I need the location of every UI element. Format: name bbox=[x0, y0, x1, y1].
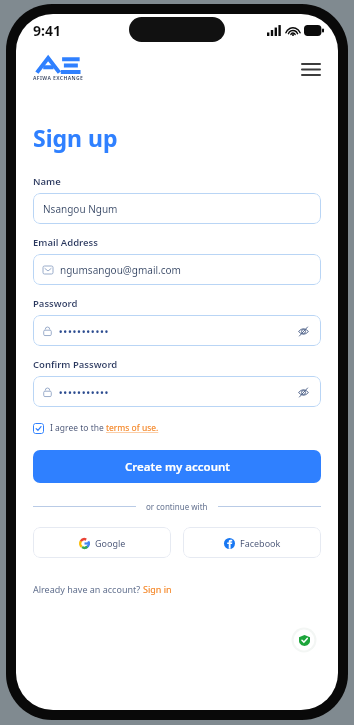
button[interactable]: ••••••••••• bbox=[33, 376, 321, 407]
button[interactable]: Facebook bbox=[183, 527, 321, 558]
staticText: Password bbox=[33, 297, 78, 310]
staticText: Email Address bbox=[33, 236, 98, 249]
button[interactable]: Show password bbox=[295, 384, 311, 400]
staticText: ••••••••••• bbox=[59, 386, 110, 398]
staticText: 9:41 bbox=[33, 21, 61, 40]
button[interactable]: Secure bbox=[291, 627, 317, 653]
staticText: ngumsangou@gmail.com bbox=[60, 263, 181, 277]
button[interactable]: Show password bbox=[295, 323, 311, 339]
button[interactable]: ngumsangou@gmail.com bbox=[33, 254, 321, 285]
button[interactable]: I agree to the bbox=[33, 422, 159, 434]
button[interactable]: Create my account bbox=[33, 450, 321, 483]
button[interactable]: ••••••••••• bbox=[33, 315, 321, 346]
staticText: Name bbox=[33, 175, 61, 188]
staticText: Confirm Password bbox=[33, 358, 118, 371]
staticText: Already have an account? bbox=[33, 583, 143, 595]
staticText: Google bbox=[95, 537, 126, 549]
button[interactable]: Nsangou Ngum bbox=[33, 193, 321, 224]
staticText: Facebook bbox=[240, 537, 281, 549]
staticText: I agree to the bbox=[50, 422, 106, 434]
staticText: Sign up bbox=[33, 122, 118, 153]
staticText: ••••••••••• bbox=[59, 325, 110, 337]
staticText: AFIWA EXCHANGE bbox=[33, 75, 84, 82]
staticText: Create my account bbox=[125, 459, 230, 475]
button[interactable]: Google bbox=[33, 527, 171, 558]
button[interactable]: terms of use. bbox=[106, 422, 159, 434]
staticText: Nsangou Ngum bbox=[43, 202, 118, 216]
staticText: or continue with bbox=[146, 501, 208, 512]
button[interactable]: Menu bbox=[296, 54, 326, 84]
button[interactable]: Sign in bbox=[143, 583, 172, 595]
